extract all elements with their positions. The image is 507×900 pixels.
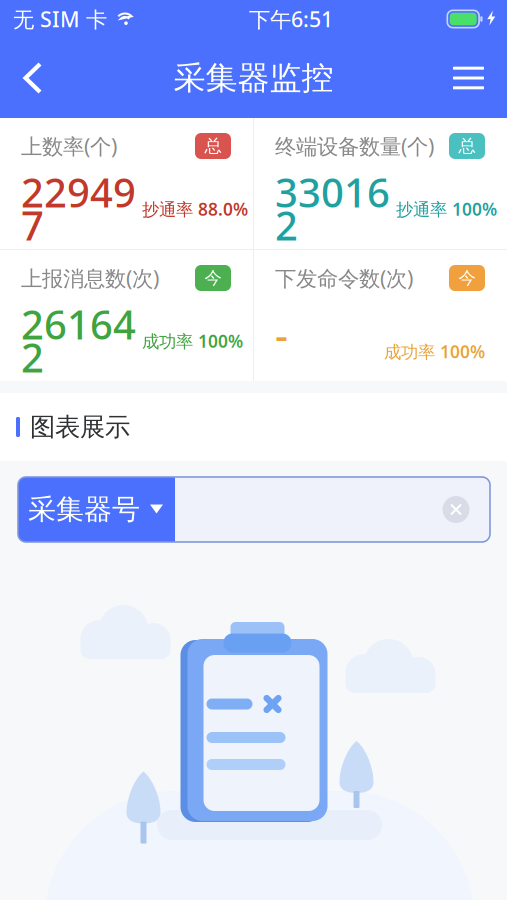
button[interactable]: 终端设备数量(个) <box>254 118 507 249</box>
staticText: 总 <box>204 135 221 157</box>
button[interactable]: Menu <box>435 48 507 107</box>
staticText: 采集器号 <box>28 492 140 527</box>
staticText: 成功率 100% <box>384 340 485 363</box>
staticText: - <box>275 308 288 361</box>
staticText: 总 <box>458 135 475 157</box>
staticText: 图表展示 <box>30 411 130 442</box>
staticText: 今 <box>458 267 475 289</box>
staticText: 2 <box>275 198 298 251</box>
staticText: 下发命令数(次) <box>275 264 413 292</box>
staticText: 26164 <box>21 297 136 350</box>
staticText: 2 <box>21 330 44 383</box>
button[interactable]: 上数率(个) <box>0 118 253 249</box>
button[interactable]: 采集器号 <box>18 477 175 542</box>
button[interactable]: Clear <box>442 477 490 541</box>
staticText: 今 <box>204 267 221 289</box>
staticText: 终端设备数量(个) <box>275 132 434 160</box>
staticText: 下午6:51 <box>249 5 333 33</box>
staticText: 上数率(个) <box>21 132 117 160</box>
staticText: 采集器监控 <box>173 58 333 98</box>
staticText: 33016 <box>275 165 390 218</box>
button[interactable]: 上报消息数(次) <box>0 250 253 381</box>
staticText: 7 <box>21 198 44 251</box>
staticText: 抄通率 100% <box>396 197 497 220</box>
staticText: 成功率 100% <box>142 329 243 352</box>
staticText: 抄通率 88.0% <box>142 197 248 220</box>
staticText: 上报消息数(次) <box>21 264 159 292</box>
staticText: 22949 <box>21 165 136 218</box>
button[interactable]: 下发命令数(次) <box>254 250 507 381</box>
staticText: 无 SIM 卡 <box>13 5 107 33</box>
button[interactable]: Back <box>0 48 61 108</box>
